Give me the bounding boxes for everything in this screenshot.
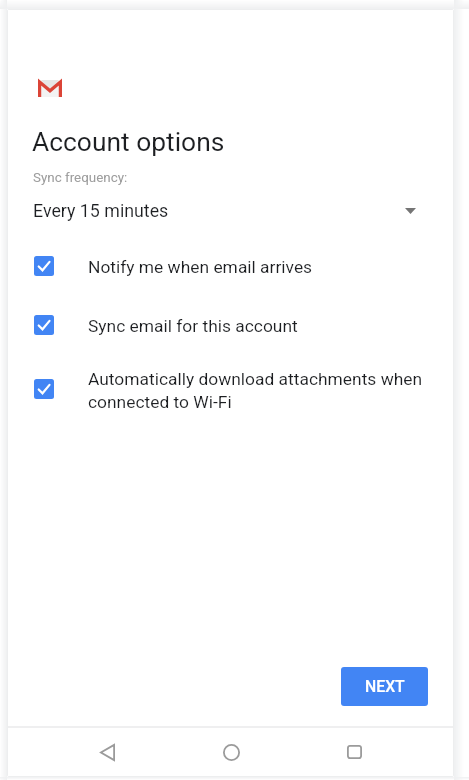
button[interactable]: Home (209, 730, 253, 774)
staticText: Automatically download attachments when … (88, 369, 423, 412)
staticText: Sync frequency: (33, 170, 128, 186)
staticText: Every 15 minutes (33, 200, 169, 221)
button[interactable]: Notify me when email arrives (8, 246, 453, 292)
button[interactable]: NEXT (341, 667, 428, 706)
button[interactable]: Recent apps (332, 730, 376, 774)
button[interactable]: Automatically download attachments when … (8, 369, 453, 415)
button[interactable]: Back (85, 730, 129, 774)
staticText: NEXT (365, 677, 405, 696)
button[interactable]: Every 15 minutes (8, 200, 453, 226)
button[interactable]: Sync email for this account (8, 305, 453, 351)
staticText: Notify me when email arrives (88, 257, 313, 277)
staticText: Sync email for this account (88, 316, 298, 336)
staticText: Account options (32, 127, 225, 158)
